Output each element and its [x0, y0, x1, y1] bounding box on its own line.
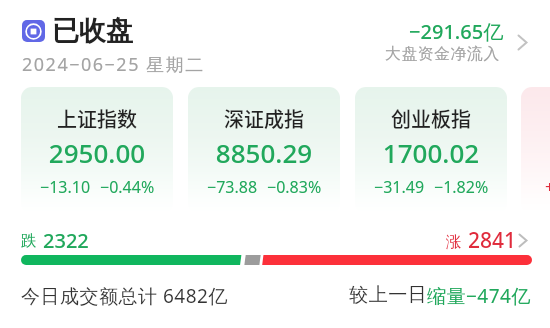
- staticText: 较上一日: [349, 283, 427, 307]
- other: Details: [518, 233, 528, 248]
- staticText: 跌: [21, 231, 37, 251]
- staticText: 深证成指: [188, 104, 340, 133]
- staticText: 1700.02: [355, 135, 507, 170]
- staticText: −31.49: [374, 176, 425, 198]
- staticText: 2024−06−25 星期二: [22, 52, 205, 77]
- staticText: −291.65亿: [409, 18, 504, 45]
- staticText: −13.10: [40, 176, 91, 198]
- staticText: 2950.00: [21, 135, 173, 170]
- staticText: 已收盘: [52, 14, 133, 48]
- staticText: 上证指数: [21, 104, 173, 133]
- other: More: [517, 34, 528, 51]
- staticText: 缩量−474亿: [427, 283, 531, 309]
- button[interactable]: 深证成指: [188, 87, 340, 213]
- staticText: −0.83%: [267, 176, 322, 198]
- staticText: 创业板指: [355, 104, 507, 133]
- button[interactable]: 北证50: [521, 87, 550, 213]
- staticText: +1.12: [545, 176, 550, 198]
- button[interactable]: −291.65亿: [389, 18, 528, 66]
- button[interactable]: 上证指数: [21, 87, 173, 213]
- staticText: 2841: [468, 226, 517, 255]
- staticText: 2322: [43, 227, 89, 254]
- staticText: −73.88: [207, 176, 258, 198]
- button[interactable]: 创业板指: [355, 87, 507, 213]
- staticText: 涨: [446, 232, 462, 252]
- staticText: −1.82%: [434, 176, 489, 198]
- staticText: 8850.29: [188, 135, 340, 170]
- staticText: 今日成交额总计 6482亿: [21, 283, 228, 309]
- staticText: 大盘资金净流入: [385, 44, 500, 64]
- button[interactable]: 涨: [446, 226, 528, 255]
- staticText: −0.44%: [100, 176, 155, 198]
